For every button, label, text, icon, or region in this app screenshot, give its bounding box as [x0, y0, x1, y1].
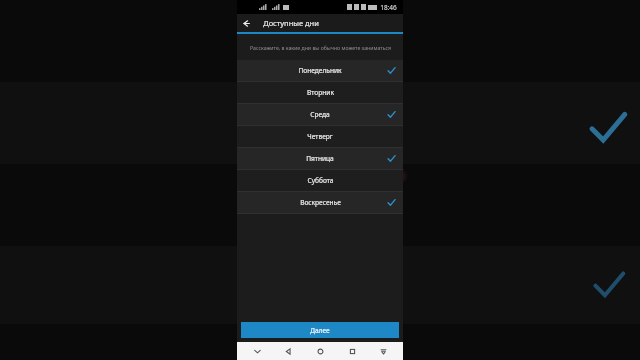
- staticText: 18:46: [380, 3, 397, 12]
- button[interactable]: Back: [237, 14, 255, 32]
- button[interactable]: Пятница: [237, 148, 403, 169]
- staticText: Воскресенье: [300, 198, 341, 207]
- button[interactable]: Recents: [340, 342, 364, 360]
- staticText: Далее: [310, 326, 330, 335]
- staticText: Пятница: [306, 154, 334, 163]
- button[interactable]: Вторник: [237, 82, 403, 103]
- button[interactable]: Далее: [241, 322, 399, 338]
- button[interactable]: Menu: [371, 342, 395, 360]
- button[interactable]: Суббота: [237, 170, 403, 191]
- staticText: Суббота: [307, 176, 334, 185]
- staticText: Доступные дни: [263, 18, 319, 28]
- button[interactable]: Четверг: [237, 126, 403, 147]
- button[interactable]: Hide keyboard: [245, 342, 269, 360]
- button[interactable]: Понедельник: [237, 60, 403, 81]
- button[interactable]: Back: [276, 342, 300, 360]
- button[interactable]: Среда: [237, 104, 403, 125]
- staticText: Четверг: [307, 132, 333, 141]
- button[interactable]: Воскресенье: [237, 192, 403, 213]
- button[interactable]: Home: [308, 342, 332, 360]
- staticText: Среда: [310, 110, 330, 119]
- staticText: Расскажите, в какие дни вы обычно можете…: [250, 44, 391, 51]
- staticText: Вторник: [307, 88, 334, 97]
- staticText: Понедельник: [298, 66, 342, 75]
